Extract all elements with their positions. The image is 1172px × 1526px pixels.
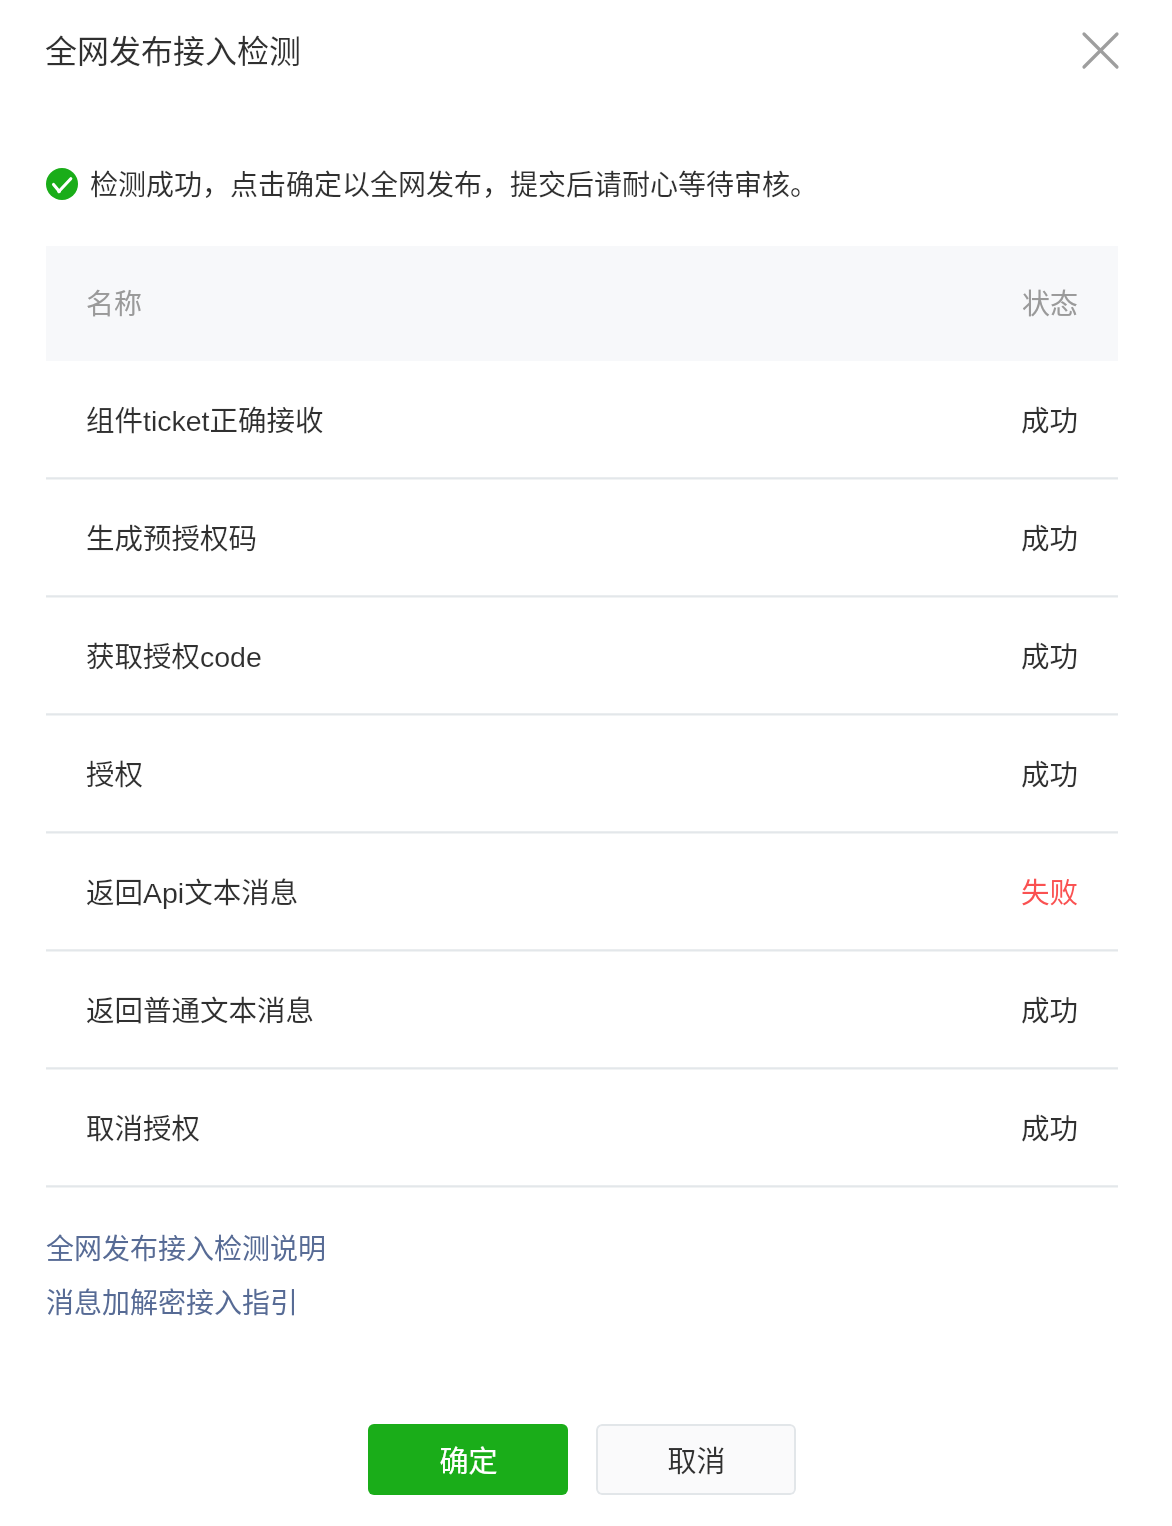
staticText: 返回普通文本消息 [86, 988, 315, 1029]
staticText: 获取授权code [86, 634, 262, 675]
staticText: 检测成功，点击确定以全网发布，提交后请耐心等待审核。 [90, 163, 819, 204]
staticText: 取消 [667, 1438, 726, 1480]
staticText: 成功 [1021, 1106, 1079, 1147]
staticText: 授权 [86, 752, 144, 793]
staticText: 成功 [1021, 752, 1079, 793]
staticText: 返回Api文本消息 [86, 870, 299, 911]
staticText: 取消授权 [86, 1106, 201, 1147]
staticText: 全网发布接入检测说明 [46, 1227, 326, 1268]
staticText: 失败 [1021, 870, 1079, 911]
staticText: 组件ticket正确接收 [86, 398, 324, 439]
staticText: 成功 [1021, 516, 1079, 557]
staticText: 成功 [1021, 634, 1079, 675]
staticText: 状态 [1022, 282, 1079, 323]
staticText: 消息加解密接入指引 [46, 1281, 298, 1322]
button[interactable]: 取消 [596, 1424, 796, 1495]
staticText: 全网发布接入检测 [45, 26, 302, 72]
button[interactable]: 全网发布接入检测说明 [46, 1222, 326, 1270]
staticText: 生成预授权码 [86, 516, 258, 557]
button[interactable]: 关闭 [1072, 22, 1128, 78]
staticText: 确定 [439, 1438, 498, 1480]
staticText: 成功 [1021, 988, 1079, 1029]
button[interactable]: 消息加解密接入指引 [46, 1276, 298, 1324]
button[interactable]: 确定 [368, 1424, 568, 1495]
staticText: 名称 [86, 282, 143, 323]
staticText: 成功 [1021, 398, 1079, 439]
